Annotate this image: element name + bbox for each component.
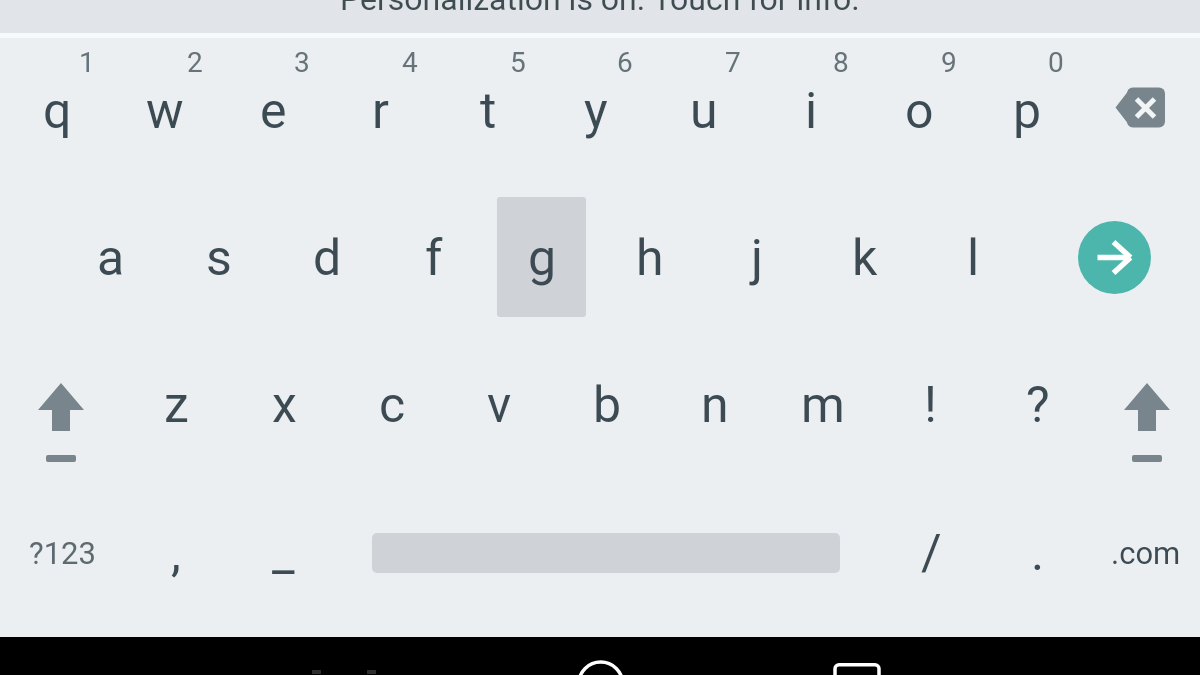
staticText: ?123 [29, 535, 96, 571]
staticText: v [487, 376, 512, 435]
staticText: f [425, 229, 443, 288]
button[interactable]: g [488, 184, 596, 332]
button[interactable]: s [165, 184, 273, 332]
staticText: k [852, 229, 878, 288]
staticText: 6 [617, 46, 633, 79]
button[interactable]: t [434, 38, 542, 184]
button[interactable] [1078, 332, 1200, 479]
button[interactable]: e [219, 38, 327, 184]
button[interactable]: r [326, 38, 434, 184]
button[interactable]: i [757, 38, 865, 184]
button[interactable]: o [865, 38, 973, 184]
staticText: 9 [941, 46, 957, 79]
staticText: 5 [510, 46, 526, 79]
button[interactable]: p [973, 38, 1081, 184]
button[interactable]: b [553, 332, 661, 479]
staticText: x [272, 376, 297, 435]
button[interactable]: ! [876, 332, 984, 479]
button[interactable] [1078, 221, 1151, 294]
button[interactable]: _ [229, 479, 337, 627]
button[interactable]: q [3, 38, 111, 184]
staticText: d [313, 229, 342, 288]
button[interactable]: l [919, 184, 1027, 332]
button[interactable] [800, 640, 910, 675]
button[interactable]: j [703, 184, 811, 332]
staticText: y [584, 82, 608, 141]
staticText: ? [1026, 376, 1050, 435]
staticText: s [206, 229, 232, 288]
button[interactable] [0, 0, 1200, 33]
button[interactable]: k [811, 184, 919, 332]
staticText: t [480, 82, 497, 141]
button[interactable]: f [380, 184, 488, 332]
staticText: , [171, 524, 181, 583]
staticText: a [97, 229, 125, 288]
staticText: c [379, 376, 406, 435]
staticText: i [805, 82, 818, 141]
staticText: 4 [402, 46, 418, 79]
button[interactable]: ? [984, 332, 1092, 479]
button[interactable]: , [122, 479, 230, 627]
staticText: w [146, 82, 184, 141]
button[interactable]: ?123 [0, 479, 124, 627]
staticText: b [593, 376, 622, 435]
staticText: . [1031, 524, 1045, 583]
button[interactable]: d [273, 184, 381, 332]
staticText: u [690, 82, 718, 141]
staticText: e [260, 82, 287, 141]
button[interactable] [290, 640, 400, 675]
staticText: ! [924, 376, 937, 435]
staticText: g [528, 229, 557, 288]
button[interactable]: a [57, 184, 165, 332]
staticText: 1 [79, 46, 95, 79]
staticText: / [921, 524, 942, 583]
staticText: 7 [725, 46, 741, 79]
staticText: m [801, 376, 845, 435]
button[interactable]: / [877, 479, 985, 627]
button[interactable]: z [122, 332, 230, 479]
staticText: 0 [1048, 46, 1064, 79]
button[interactable]: y [542, 38, 650, 184]
staticText: l [967, 229, 980, 288]
staticText: p [1013, 82, 1042, 141]
staticText: z [164, 376, 189, 435]
button[interactable]: . [984, 479, 1092, 627]
staticText: 8 [833, 46, 849, 79]
button[interactable]: u [650, 38, 758, 184]
button[interactable] [545, 640, 655, 675]
button[interactable]: w [111, 38, 219, 184]
staticText: j [751, 229, 763, 288]
staticText: 2 [187, 46, 203, 79]
staticText: _ [272, 524, 295, 583]
button[interactable]: v [445, 332, 553, 479]
staticText: 3 [294, 46, 310, 79]
staticText: Personalization is on. Touch for info. [340, 0, 860, 18]
button[interactable]: n [661, 332, 769, 479]
button[interactable] [0, 332, 122, 479]
staticText: o [905, 82, 934, 141]
staticText: .com [1111, 535, 1181, 571]
button[interactable]: c [338, 332, 446, 479]
staticText: q [43, 82, 72, 141]
button[interactable]: h [596, 184, 704, 332]
button[interactable]: x [230, 332, 338, 479]
button[interactable]: .com [1092, 479, 1200, 627]
staticText: h [636, 229, 664, 288]
button[interactable]: m [769, 332, 877, 479]
staticText: r [372, 82, 389, 141]
button[interactable] [1085, 38, 1198, 184]
staticText: n [701, 376, 729, 435]
